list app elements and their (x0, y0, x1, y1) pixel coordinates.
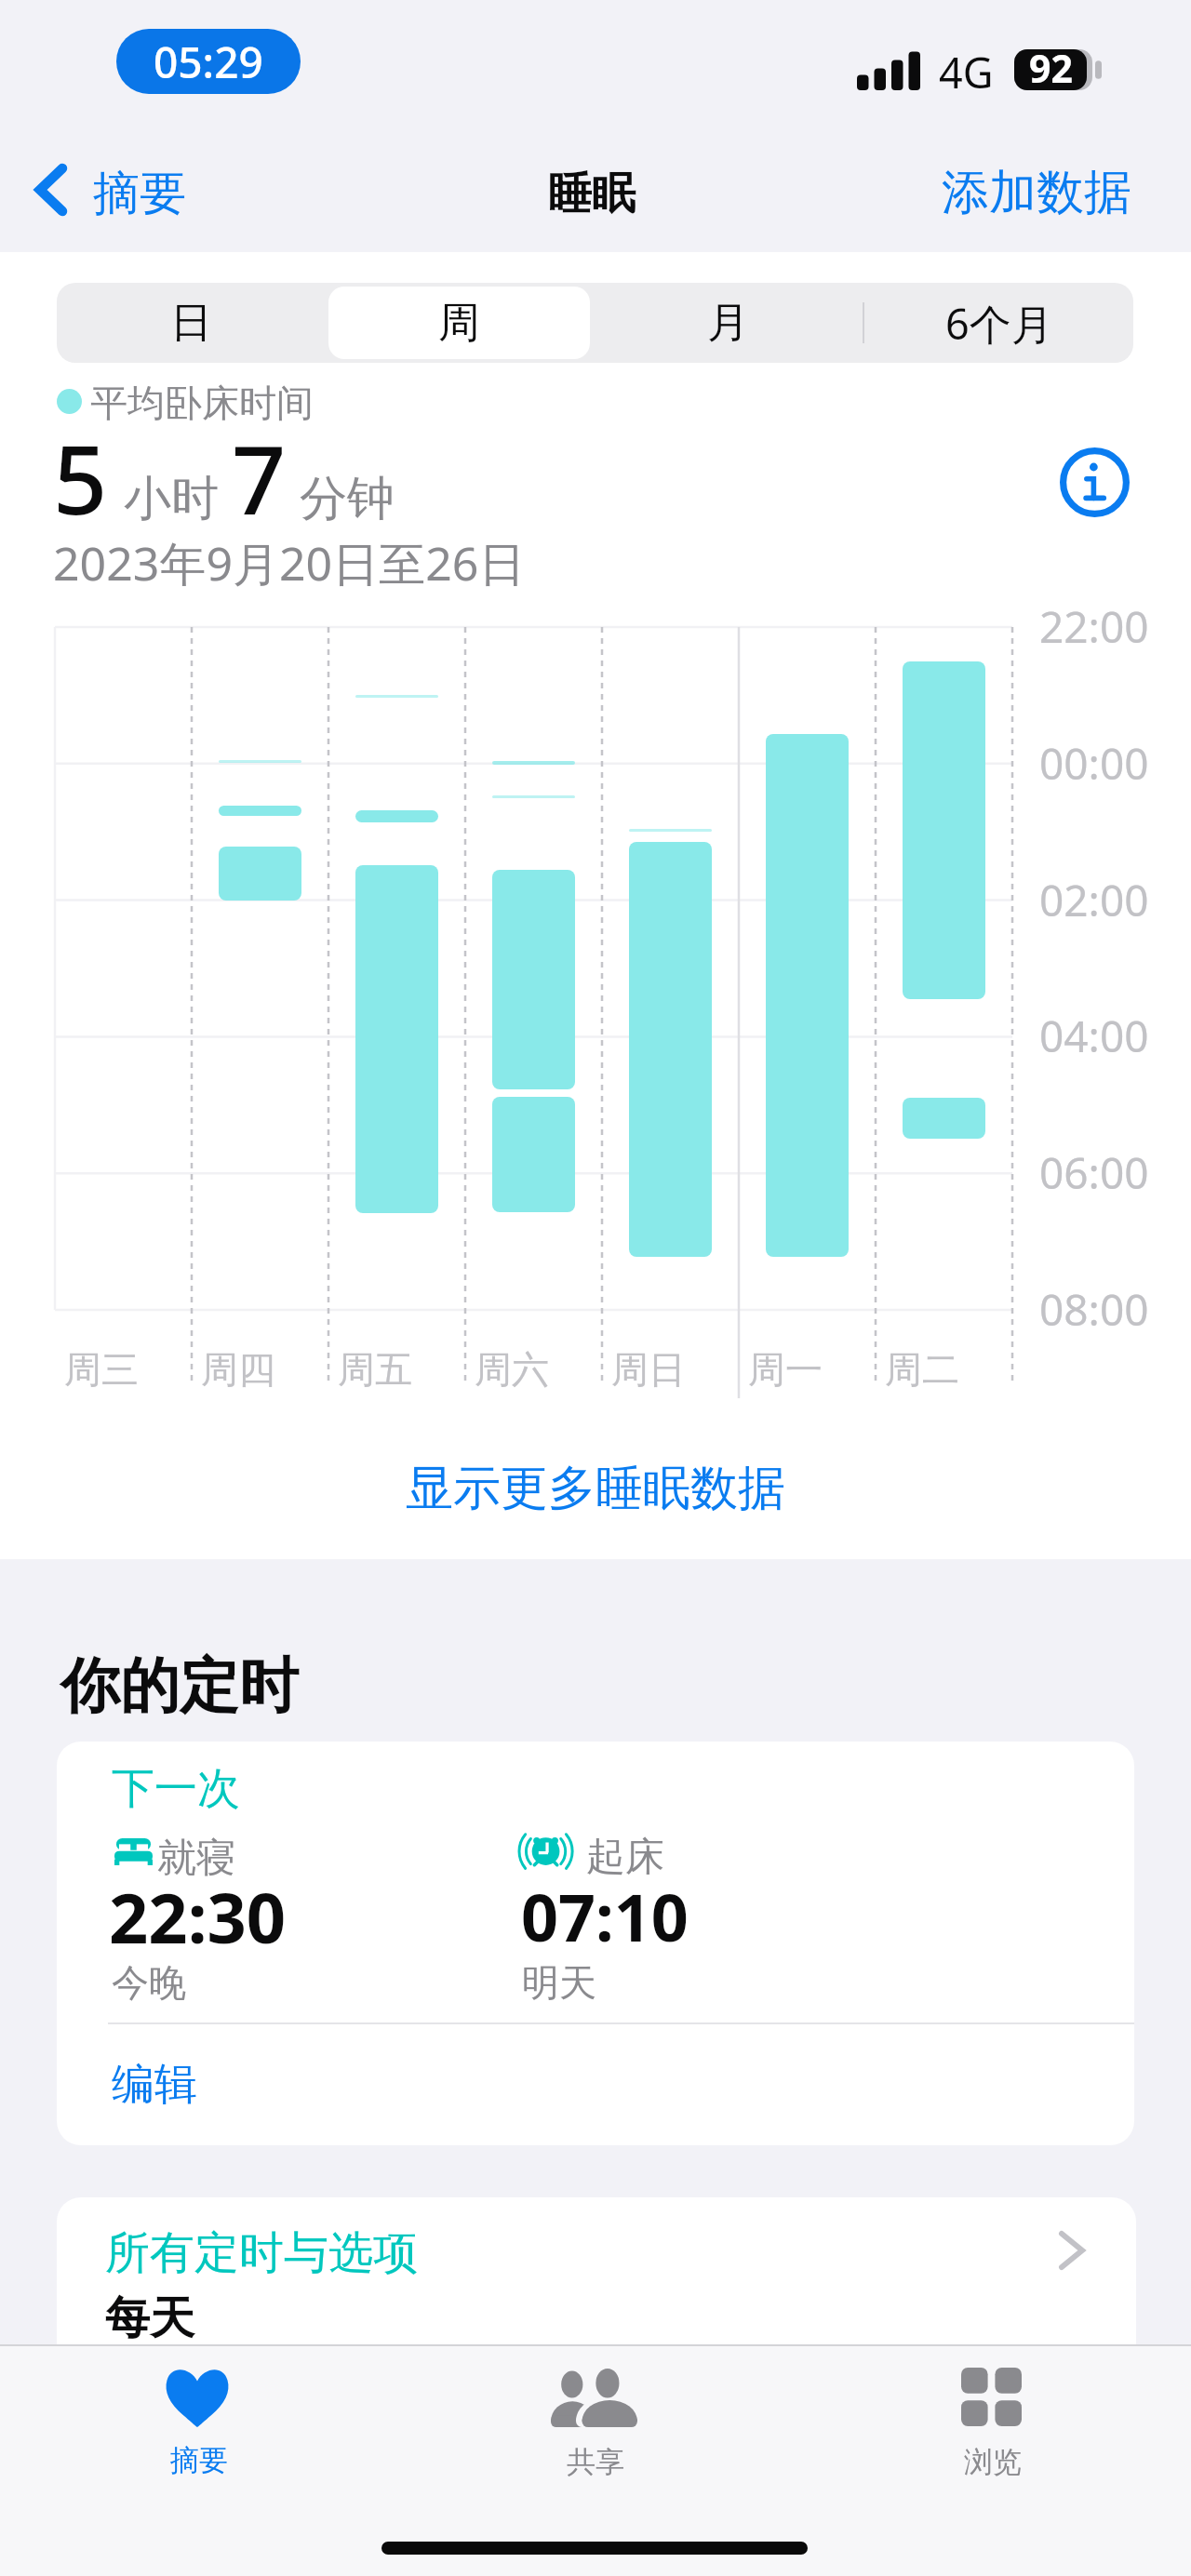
staticText: 周 (438, 297, 480, 350)
staticText: 摘要 (170, 2442, 228, 2478)
staticText: 06:00 (1039, 1143, 1149, 1202)
staticText: 7 (232, 413, 287, 542)
staticText: 睡眠 (548, 167, 636, 221)
button[interactable]: 浏览 (906, 2359, 1079, 2499)
staticText: 显示更多睡眠数据 (406, 1459, 785, 1518)
staticText: 你的定时 (60, 1648, 299, 1724)
staticText: 下一次 (112, 1762, 240, 1816)
staticText: 每天 (105, 2290, 194, 2346)
button[interactable]: 信息 (1060, 447, 1130, 517)
staticText: 00:00 (1039, 734, 1149, 793)
staticText: 明天 (522, 1959, 596, 2006)
staticText: 22:30 (109, 1870, 287, 1964)
button[interactable]: 编辑 (57, 2024, 1134, 2145)
button[interactable]: 周 (328, 287, 590, 359)
staticText: 摘要 (93, 165, 186, 223)
staticText: 周四 (201, 1346, 275, 1393)
staticText: 共享 (567, 2444, 624, 2480)
button[interactable]: 摘要 (112, 2359, 285, 2499)
staticText: 起床 (586, 1833, 664, 1882)
staticText: 07:10 (521, 1872, 689, 1960)
button[interactable]: 摘要 (19, 149, 205, 234)
staticText: 分钟 (300, 469, 395, 528)
staticText: 周五 (338, 1346, 412, 1393)
staticText: 04:00 (1039, 1007, 1149, 1065)
staticText: 月 (707, 297, 749, 350)
button[interactable]: 添加数据 (923, 149, 1150, 234)
staticText: 6个月 (945, 295, 1053, 352)
button[interactable]: 月 (597, 287, 859, 359)
button[interactable]: 显示更多睡眠数据 (0, 1437, 1191, 1540)
staticText: 周一 (748, 1346, 823, 1393)
button[interactable]: 共享 (509, 2359, 682, 2499)
button[interactable]: 所有定时与选项 (57, 2197, 1136, 2402)
staticText: 周三 (64, 1346, 139, 1393)
staticText: 4G (939, 44, 994, 100)
staticText: 22:00 (1039, 597, 1149, 656)
staticText: 92 (1029, 42, 1073, 94)
staticText: 编辑 (112, 2058, 197, 2112)
staticText: 周二 (885, 1346, 959, 1393)
staticText: 周日 (611, 1346, 686, 1393)
staticText: 2023年9月20日至26日 (53, 531, 526, 594)
staticText: 浏览 (964, 2444, 1022, 2480)
staticText: 添加数据 (942, 163, 1131, 222)
button[interactable]: 6个月 (868, 287, 1130, 359)
staticText: 05:29 (154, 33, 263, 91)
staticText: 日 (170, 297, 212, 350)
staticText: 02:00 (1039, 871, 1149, 929)
staticText: 所有定时与选项 (105, 2225, 418, 2281)
staticText: 08:00 (1039, 1280, 1149, 1339)
staticText: 周六 (475, 1346, 549, 1393)
staticText: 今晚 (112, 1959, 186, 2006)
staticText: 5 (53, 413, 108, 542)
button[interactable]: 日 (60, 287, 321, 359)
staticText: 就寝 (157, 1834, 235, 1883)
staticText: 平均卧床时间 (90, 380, 314, 426)
staticText: 小时 (124, 469, 219, 528)
